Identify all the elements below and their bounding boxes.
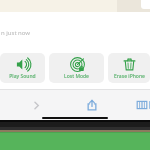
button[interactable]: Erase iPhone — [108, 53, 150, 83]
button[interactable]: Play Sound — [0, 53, 45, 83]
button[interactable]: Lost Mode — [49, 53, 104, 83]
button[interactable]: Forward — [26, 95, 46, 115]
staticText: n just now — [1, 29, 31, 37]
staticText: Play Sound — [9, 73, 36, 80]
button[interactable]: Bookmarks — [134, 95, 150, 115]
button[interactable]: Share — [82, 95, 102, 115]
staticText: Lost Mode — [64, 73, 89, 80]
staticText: Erase iPhone — [114, 73, 145, 80]
